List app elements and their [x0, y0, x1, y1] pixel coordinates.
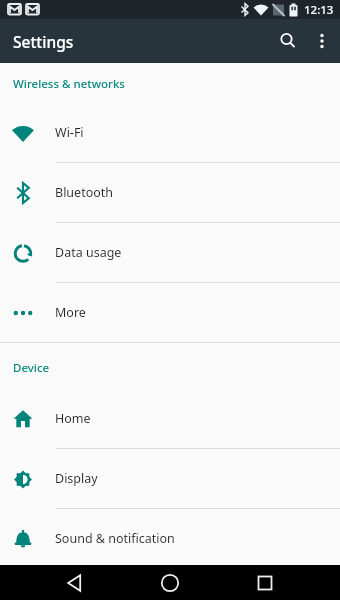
- staticText: Display: [55, 470, 98, 487]
- button[interactable]: Home: [0, 389, 340, 448]
- staticText: Device: [13, 360, 50, 376]
- button[interactable]: Bluetooth: [0, 163, 340, 222]
- staticText: Wi-Fi: [55, 124, 84, 141]
- staticText: Bluetooth: [55, 184, 114, 201]
- button[interactable]: [47, 565, 103, 600]
- staticText: Home: [55, 410, 91, 427]
- button[interactable]: Wi-Fi: [0, 103, 340, 162]
- staticText: Settings: [13, 31, 74, 52]
- button[interactable]: [142, 565, 198, 600]
- button[interactable]: More: [0, 283, 340, 342]
- button[interactable]: Display: [0, 449, 340, 508]
- button[interactable]: Data usage: [0, 223, 340, 282]
- staticText: More: [55, 304, 86, 321]
- button[interactable]: [237, 565, 293, 600]
- staticText: Data usage: [55, 244, 122, 261]
- staticText: 12:13: [304, 2, 334, 18]
- button[interactable]: [268, 21, 308, 61]
- button[interactable]: [308, 25, 340, 57]
- button[interactable]: Sound & notification: [0, 509, 340, 568]
- staticText: Wireless & networks: [13, 76, 125, 92]
- staticText: Sound & notification: [55, 530, 175, 547]
